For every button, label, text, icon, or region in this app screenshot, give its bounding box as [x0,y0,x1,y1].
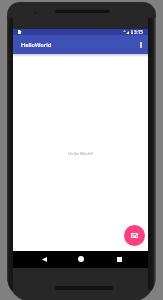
button[interactable]: Back [36,251,52,267]
staticText: HelloWorld [21,41,52,49]
staticText: 3:15 [134,29,143,35]
staticText: Hello World! [13,150,148,156]
button[interactable]: More options [135,35,147,54]
button[interactable]: Home [73,251,89,267]
button[interactable]: Recent apps [111,251,127,267]
button[interactable]: Compose email [124,225,145,246]
